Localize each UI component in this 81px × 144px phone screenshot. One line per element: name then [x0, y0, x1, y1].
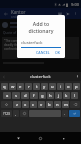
staticText: x: [24, 102, 27, 108]
staticText: confronted is a clusterfuck.": [4, 47, 44, 51]
button[interactable]: a: [3, 92, 11, 99]
button[interactable]: Archive: [56, 10, 64, 18]
button[interactable]: d: [21, 92, 29, 99]
staticText: o: [67, 84, 70, 90]
staticText: "The combination of all the: [4, 39, 43, 43]
staticText: .: [64, 111, 66, 116]
button[interactable]: c: [30, 101, 37, 108]
button[interactable]: OK: [53, 48, 63, 56]
button[interactable]: ?123: [1, 110, 12, 117]
staticText: j: [58, 93, 60, 99]
staticText: t: [36, 84, 38, 90]
button[interactable]: Backspace: [70, 101, 80, 108]
button[interactable]: h: [47, 92, 54, 99]
staticText: Add to dictionary: [20, 20, 62, 34]
button[interactable]: w: [9, 83, 16, 90]
staticText: n: [56, 102, 59, 108]
staticText: q: [3, 84, 6, 90]
button[interactable]: u: [49, 83, 56, 90]
button[interactable]: l: [71, 92, 78, 99]
staticText: p: [75, 84, 78, 90]
staticText: ,: [15, 111, 17, 116]
button[interactable]: Enter: [69, 110, 80, 117]
staticText: andrew@kantor.com: [11, 15, 40, 19]
staticText: i: [60, 84, 62, 90]
button[interactable]: Send: [64, 10, 72, 18]
button[interactable]: v: [38, 101, 45, 108]
button[interactable]: n: [54, 101, 61, 108]
button[interactable]: x: [22, 101, 29, 108]
staticText: y: [43, 84, 46, 90]
staticText: Quote of the week: [3, 31, 31, 35]
staticText: s: [15, 93, 18, 99]
staticText: clusterfuck: [30, 74, 51, 79]
button[interactable]: j: [55, 92, 62, 99]
button[interactable]: More suggestions: [1, 74, 6, 79]
staticText: c: [32, 102, 35, 108]
staticText: e: [19, 84, 22, 90]
staticText: m: [64, 102, 68, 108]
staticText: g: [41, 93, 44, 99]
staticText: f: [33, 93, 35, 99]
button[interactable]: i: [57, 83, 64, 90]
staticText: w: [11, 84, 15, 90]
button[interactable]: CANCEL: [34, 48, 52, 56]
staticText: h: [49, 93, 52, 99]
button[interactable]: Recent apps: [59, 134, 68, 143]
button[interactable]: Home: [36, 134, 45, 143]
button[interactable]: g: [39, 92, 46, 99]
button[interactable]: clusterfuck: [27, 73, 54, 80]
button[interactable]: clusterfuck: [21, 40, 61, 48]
staticText: l: [74, 93, 76, 99]
button[interactable]: .: [62, 110, 68, 117]
button[interactable]: t: [33, 83, 40, 90]
staticText: CANCEL: [36, 50, 50, 54]
button[interactable]: q: [1, 83, 8, 90]
staticText: 9:00: [71, 2, 79, 7]
button[interactable]: Back: [14, 134, 23, 143]
staticText: k: [65, 93, 68, 99]
staticText: deadly things we have: [4, 43, 36, 47]
button[interactable]: r: [25, 83, 32, 90]
button[interactable]: More options: [72, 10, 79, 17]
button[interactable]: ,: [13, 110, 19, 117]
staticText: Kantor: [11, 9, 26, 15]
button[interactable]: f: [30, 92, 38, 99]
staticText: a: [6, 93, 9, 99]
button[interactable]: z: [13, 101, 21, 108]
staticText: r: [28, 84, 30, 90]
button[interactable]: Back: [2, 10, 10, 18]
button[interactable]: s: [12, 92, 20, 99]
button[interactable]: y: [41, 83, 48, 90]
staticText: clusterfuck: [21, 40, 43, 46]
staticText: z: [16, 102, 18, 108]
button[interactable]: b: [46, 101, 53, 108]
staticText: OK: [55, 50, 61, 54]
button[interactable]: m: [62, 101, 69, 108]
button[interactable]: k: [63, 92, 70, 99]
button[interactable]: Shift: [1, 101, 12, 108]
staticText: u: [51, 84, 54, 90]
button[interactable]: p: [73, 83, 80, 90]
staticText: b: [48, 102, 51, 108]
button[interactable]: o: [65, 83, 72, 90]
button[interactable]: e: [17, 83, 24, 90]
staticText: d: [24, 93, 27, 99]
staticText: ?123: [3, 112, 10, 116]
button[interactable]: Voice input: [75, 74, 80, 79]
staticText: v: [40, 102, 43, 108]
button[interactable]: Emoji: [20, 110, 28, 117]
